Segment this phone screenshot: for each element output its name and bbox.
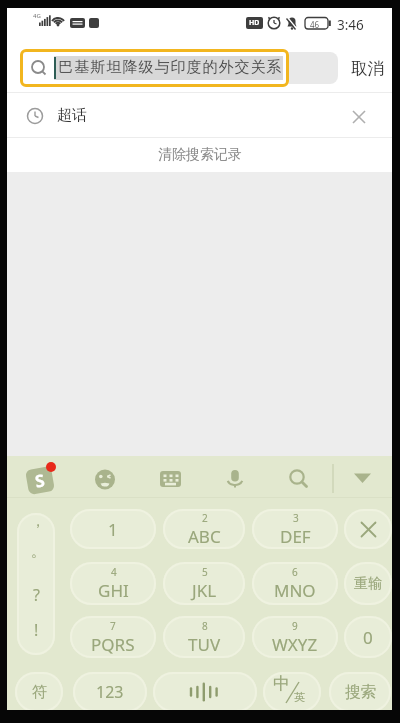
button[interactable]: 9 xyxy=(252,616,338,658)
button[interactable] xyxy=(88,462,122,496)
staticText: 。 xyxy=(31,543,45,561)
button[interactable] xyxy=(153,462,187,496)
staticText: WXYZ xyxy=(272,633,318,656)
staticText: 46 xyxy=(310,19,320,30)
staticText: HD xyxy=(249,18,260,28)
staticText: 搜索 xyxy=(345,682,376,702)
staticText: 重输 xyxy=(354,575,382,593)
button[interactable]: 符 xyxy=(15,672,63,712)
staticText: ， xyxy=(31,513,45,531)
staticText: S xyxy=(33,468,47,493)
button[interactable]: 1 xyxy=(70,509,156,549)
button[interactable]: 取消 xyxy=(343,44,391,92)
button[interactable]: 5 xyxy=(163,562,245,605)
button[interactable]: 中 xyxy=(263,672,321,712)
staticText: 3:46 xyxy=(337,16,364,34)
button[interactable]: 搜索 xyxy=(329,672,391,712)
button[interactable] xyxy=(218,462,252,496)
button[interactable]: 8 xyxy=(163,616,245,658)
button[interactable]: ， xyxy=(17,513,55,655)
button[interactable]: 6 xyxy=(252,562,338,605)
staticText: 3 xyxy=(293,511,299,525)
staticText: 123 xyxy=(96,681,124,703)
staticText: 巴基斯坦降级与印度的外交关系 xyxy=(58,58,282,77)
button[interactable]: 清除搜索记录 xyxy=(0,138,400,172)
staticText: ABC xyxy=(188,525,221,548)
staticText: ? xyxy=(33,584,40,606)
staticText: 符 xyxy=(32,683,47,702)
staticText: GHI xyxy=(98,579,129,602)
staticText: MNO xyxy=(274,579,316,602)
button[interactable]: 3 xyxy=(252,509,338,549)
button[interactable]: 2 xyxy=(163,509,245,549)
staticText: PQRS xyxy=(91,633,135,656)
staticText: 0 xyxy=(363,626,373,649)
staticText: 中 xyxy=(273,673,290,694)
staticText: 英 xyxy=(294,690,305,704)
button[interactable]: 0 xyxy=(344,616,392,658)
staticText: 4G xyxy=(33,12,41,20)
button[interactable]: 4 xyxy=(70,562,156,605)
button[interactable]: S xyxy=(25,466,55,495)
staticText: ! xyxy=(34,619,39,641)
staticText: DEF xyxy=(280,525,311,548)
staticText: 取消 xyxy=(351,58,384,79)
button[interactable] xyxy=(280,462,314,496)
staticText: 7 xyxy=(110,619,116,633)
staticText: TUV xyxy=(188,633,221,656)
staticText: JKL xyxy=(192,579,217,602)
staticText: 8 xyxy=(202,619,208,633)
staticText: 9 xyxy=(292,619,298,633)
button[interactable]: 7 xyxy=(70,616,156,658)
button[interactable] xyxy=(153,672,257,712)
staticText: 超话 xyxy=(57,106,87,125)
staticText: 1 xyxy=(108,518,118,541)
button[interactable]: 123 xyxy=(73,672,147,712)
button[interactable] xyxy=(344,509,392,549)
button[interactable]: 重输 xyxy=(344,562,392,605)
button[interactable]: 超话 xyxy=(0,93,400,137)
staticText: 6 xyxy=(292,565,298,579)
staticText: 2 xyxy=(202,511,208,525)
staticText: 清除搜索记录 xyxy=(158,146,242,164)
staticText: 4 xyxy=(111,565,117,579)
button[interactable] xyxy=(345,462,379,496)
staticText: 5 xyxy=(202,565,208,579)
